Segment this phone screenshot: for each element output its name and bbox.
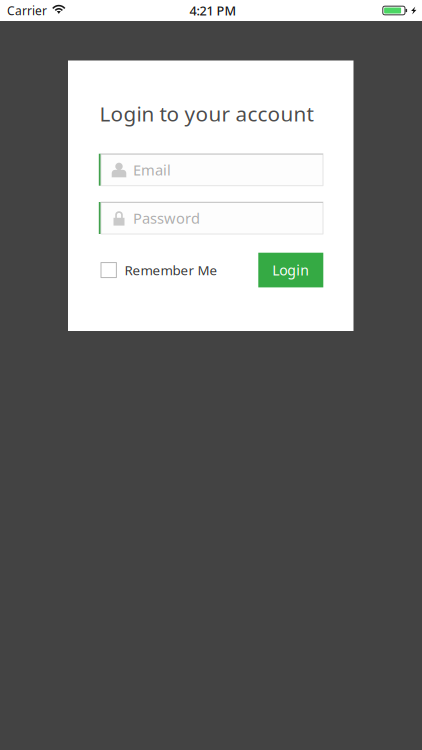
staticText: Remember Me xyxy=(124,261,217,279)
button[interactable]: Email xyxy=(99,154,323,186)
staticText: Login to your account xyxy=(99,99,313,128)
button[interactable]: Password xyxy=(99,202,323,234)
staticText: Carrier xyxy=(7,2,47,19)
staticText: 4:21 PM xyxy=(189,2,236,19)
staticText: Email xyxy=(133,160,171,180)
staticText: Login xyxy=(272,260,309,280)
button[interactable]: Login xyxy=(258,253,323,287)
button[interactable]: Remember Me xyxy=(101,253,217,287)
staticText: Password xyxy=(133,208,200,228)
